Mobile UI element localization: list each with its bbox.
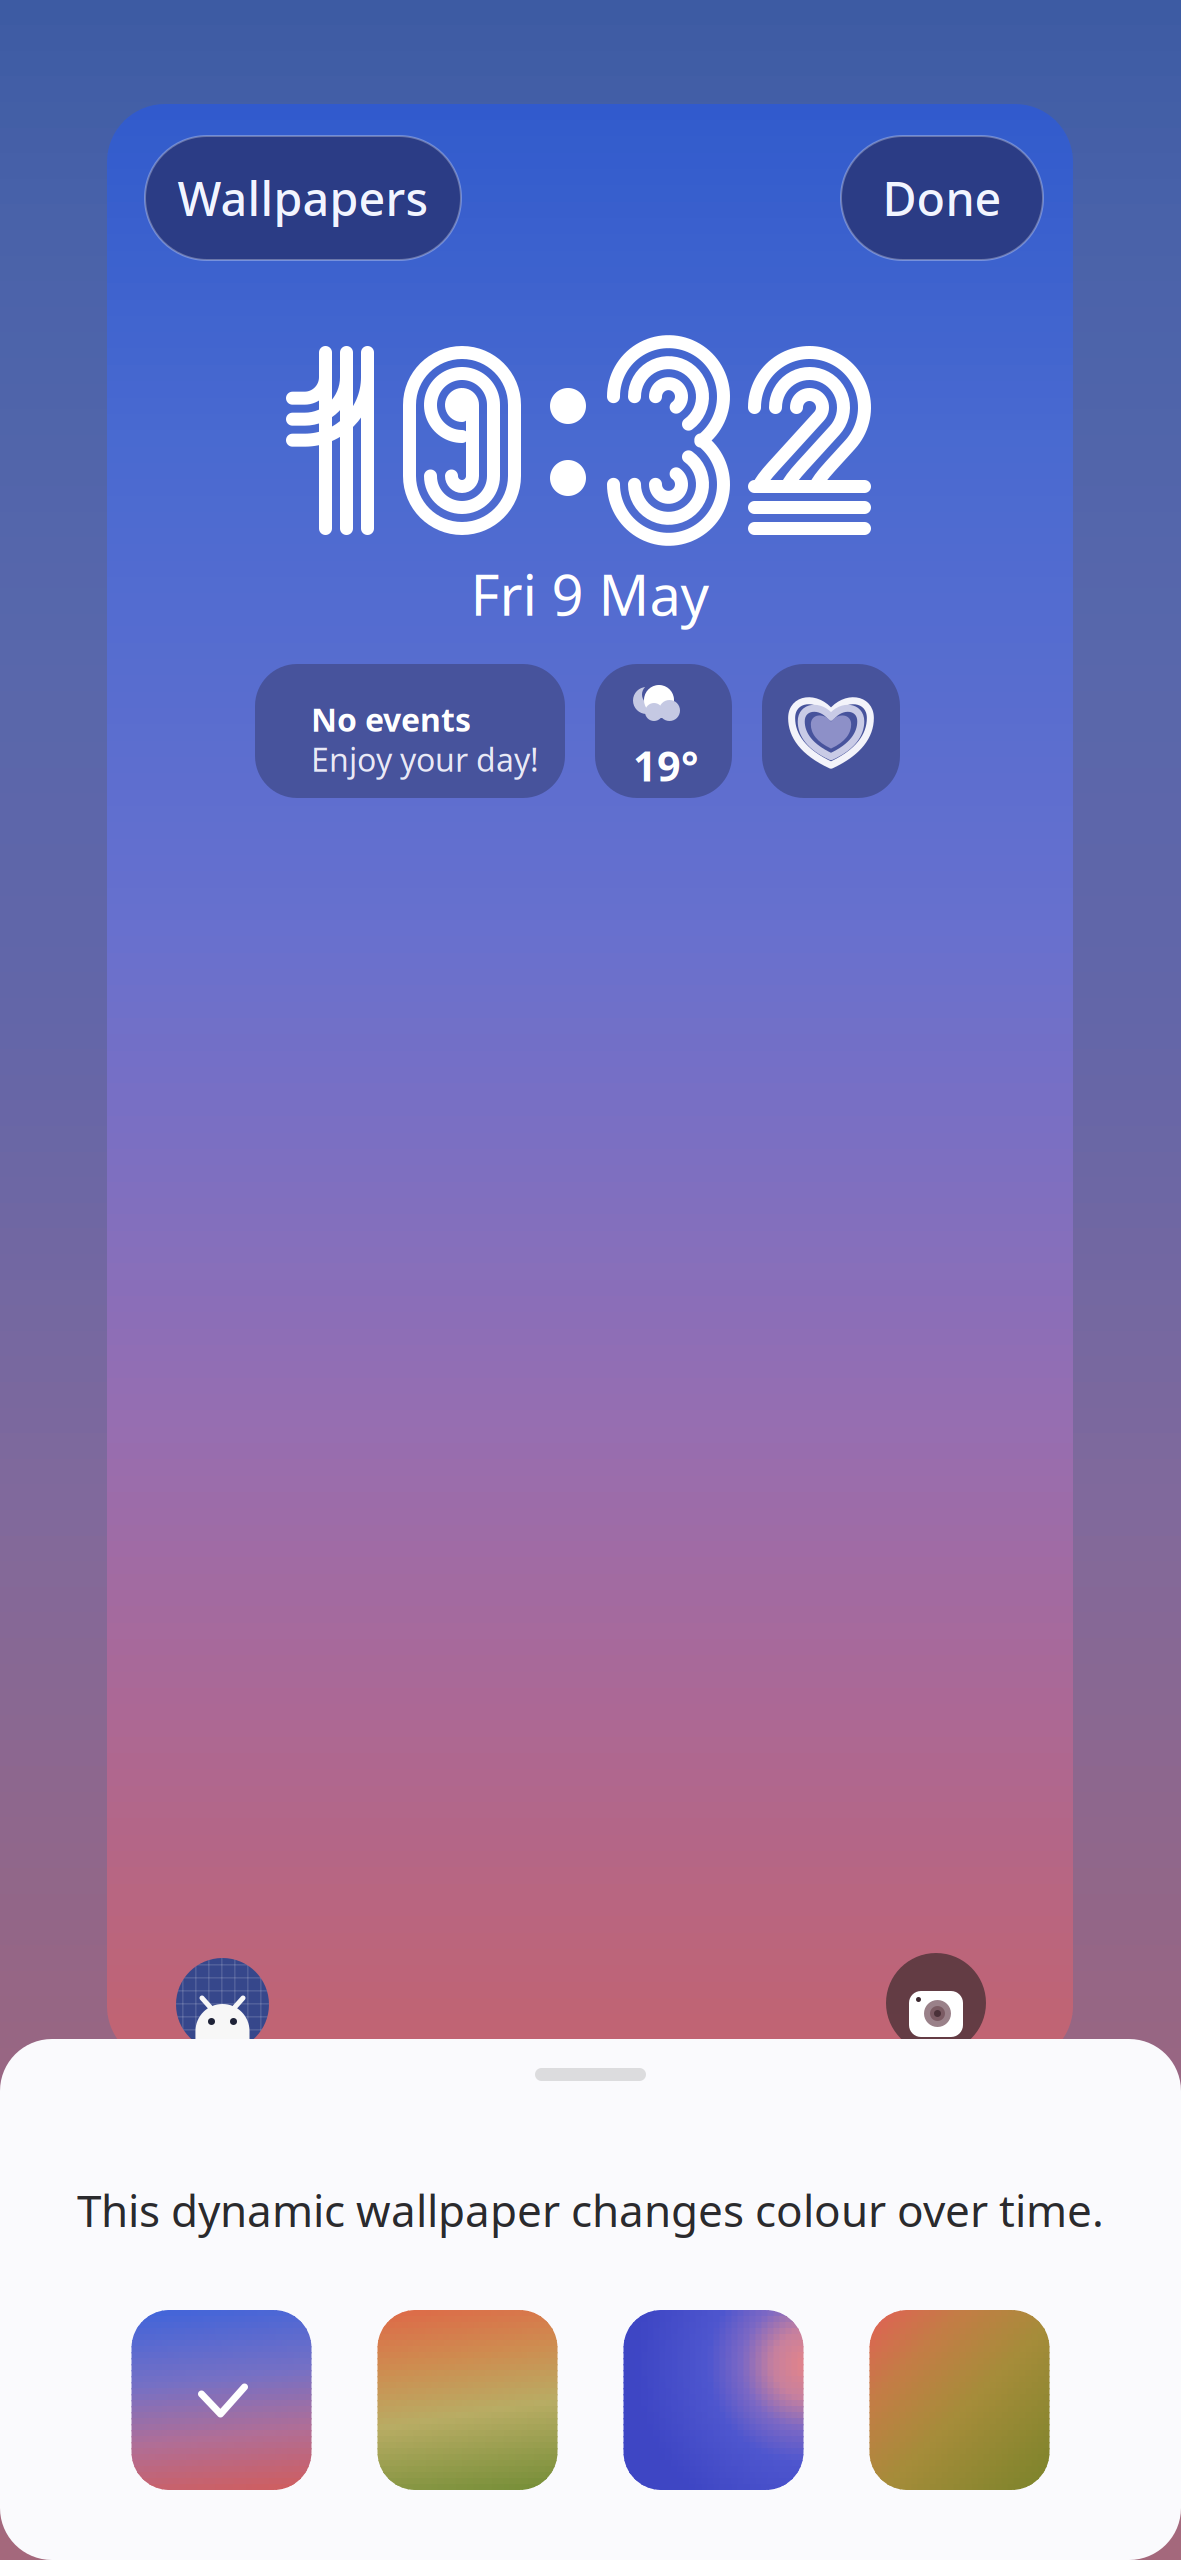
staticText: This dynamic wallpaper changes colour ov…: [77, 2181, 1104, 2239]
staticText: 19°: [633, 738, 699, 793]
button[interactable]: Android shortcut: [176, 1958, 269, 2051]
staticText: Fri 9 May: [470, 557, 709, 631]
staticText: Wallpapers: [177, 167, 428, 229]
staticText: No events: [311, 698, 471, 740]
button[interactable]: Wallpapers: [145, 136, 461, 260]
button[interactable]: Salmon to olive wallpaper: [869, 2310, 1049, 2490]
button[interactable]: Health: [762, 664, 900, 798]
staticText: Done: [882, 167, 1001, 229]
button[interactable]: Blue to red wallpaper, selected: [131, 2310, 311, 2490]
button[interactable]: Camera: [886, 1953, 986, 2053]
button[interactable]: No events: [255, 664, 565, 798]
button[interactable]: Done: [841, 136, 1043, 260]
staticText: Enjoy your day!: [311, 738, 539, 780]
button[interactable]: Orange to green wallpaper: [377, 2310, 557, 2490]
button[interactable]: Blue to pink wallpaper: [623, 2310, 803, 2490]
button[interactable]: Weather, 19 degrees: [595, 664, 732, 798]
